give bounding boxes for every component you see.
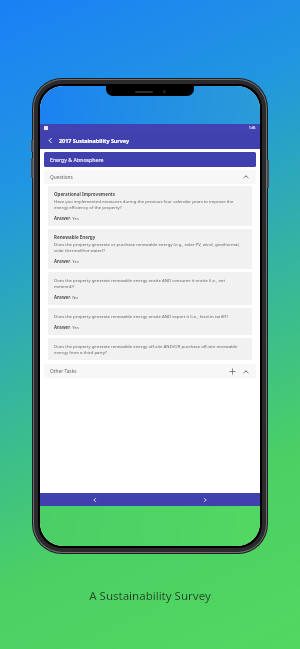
button[interactable]: Does the property generate renewable ene…	[48, 272, 252, 305]
staticText: Answer: No	[54, 294, 79, 300]
button[interactable]: Next	[150, 493, 260, 506]
staticText: Have you implemented measures during the…	[54, 198, 246, 210]
button[interactable]: Collapse other tasks	[241, 367, 250, 376]
staticText: Questions	[50, 174, 73, 181]
button[interactable]: Questions	[44, 170, 256, 184]
staticText: Does the property generate or purchase r…	[54, 241, 246, 253]
button[interactable]: Operational Improvements	[48, 186, 252, 226]
staticText: Energy & Atmosphere	[50, 156, 104, 163]
staticText: 1:46	[249, 126, 256, 130]
staticText: A Sustainability Survey	[89, 588, 211, 604]
staticText: Operational Improvements	[54, 191, 116, 197]
button[interactable]: Energy & Atmosphere	[44, 152, 256, 167]
button[interactable]: Does the property generate renewable ene…	[48, 338, 252, 360]
staticText: Answer: Yes	[54, 258, 80, 264]
button[interactable]: Other Tasks	[44, 364, 256, 378]
staticText: Other Tasks	[50, 368, 77, 375]
staticText: Answer: Yes	[54, 215, 80, 221]
staticText: 2017 Sustainability Survey	[59, 137, 130, 144]
staticText: Renewable Energy	[54, 234, 96, 240]
staticText: Does the property generate renewable ene…	[54, 313, 229, 319]
button[interactable]: Previous	[40, 493, 150, 506]
staticText: Answer: Yes	[54, 324, 80, 330]
staticText: Does the property generate renewable ene…	[54, 343, 246, 355]
button[interactable]: Does the property generate renewable ene…	[48, 308, 252, 335]
button[interactable]: Back	[45, 135, 56, 146]
other: Collapse	[242, 173, 250, 181]
staticText: Does the property generate renewable ene…	[54, 277, 246, 289]
button[interactable]: Renewable Energy	[48, 229, 252, 269]
button[interactable]: Add task	[228, 367, 237, 376]
